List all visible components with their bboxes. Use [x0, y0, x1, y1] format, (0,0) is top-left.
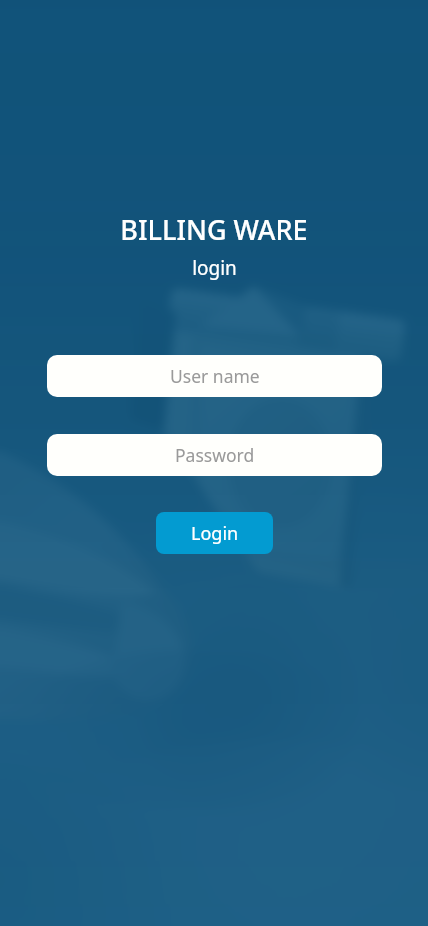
staticText: Password [175, 443, 255, 467]
staticText: login [192, 255, 237, 281]
staticText: Login [191, 521, 239, 546]
staticText: User name [170, 364, 260, 388]
button[interactable]: Login [156, 512, 273, 554]
staticText: BILLING WARE [120, 211, 308, 248]
button[interactable]: Password [47, 434, 382, 476]
button[interactable]: User name [47, 355, 382, 397]
